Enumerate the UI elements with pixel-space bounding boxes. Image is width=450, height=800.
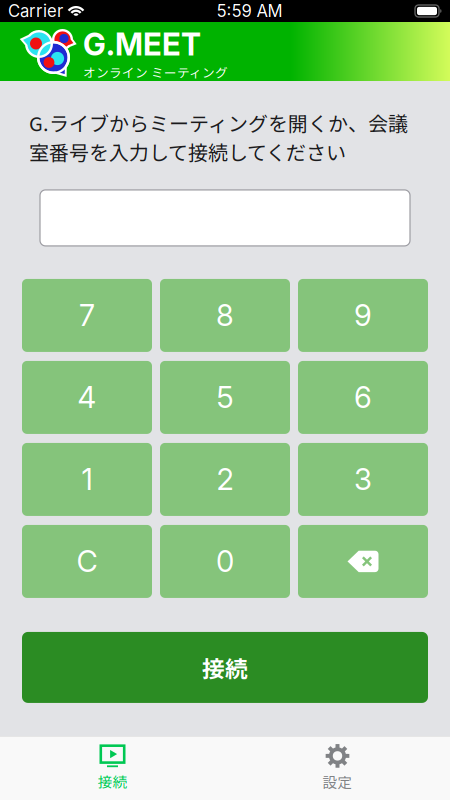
button[interactable]: 7 <box>22 279 152 352</box>
button[interactable]: 3 <box>298 443 428 516</box>
staticText: 7 <box>79 298 95 333</box>
button[interactable]: 1 <box>22 443 152 516</box>
staticText: C <box>76 544 97 579</box>
staticText: 4 <box>77 380 96 415</box>
button[interactable]: 2 <box>160 443 290 516</box>
staticText: 設定 <box>322 771 352 792</box>
staticText: G.MEET <box>83 26 201 63</box>
staticText: 3 <box>354 462 372 497</box>
staticText: 5 <box>216 380 233 415</box>
button[interactable]: 9 <box>298 279 428 352</box>
staticText: Carrier <box>8 1 63 21</box>
button[interactable]: C <box>22 525 152 598</box>
button[interactable]: 4 <box>22 361 152 434</box>
button[interactable]: 6 <box>298 361 428 434</box>
staticText: 6 <box>354 380 372 415</box>
staticText: 接続 <box>202 651 248 684</box>
staticText: 0 <box>216 544 234 579</box>
button[interactable]: 5 <box>160 361 290 434</box>
staticText: G.ライブからミーティングを開くか、会議室番号を入力して接続してください <box>29 108 408 166</box>
staticText: 5:59 AM <box>216 1 282 21</box>
staticText: オンライン ミーティング <box>83 63 228 81</box>
staticText: 2 <box>216 462 233 497</box>
button[interactable]: 設定 <box>225 736 450 800</box>
button[interactable]: 接続 <box>0 736 225 800</box>
button[interactable]: 8 <box>160 279 290 352</box>
staticText: 接続 <box>97 770 127 792</box>
staticText: 8 <box>216 298 234 333</box>
staticText: 9 <box>354 298 372 333</box>
button[interactable]: 0 <box>160 525 290 598</box>
button[interactable]: 接続 <box>22 632 428 703</box>
staticText: 1 <box>81 462 92 497</box>
button[interactable]: Delete <box>298 525 428 598</box>
